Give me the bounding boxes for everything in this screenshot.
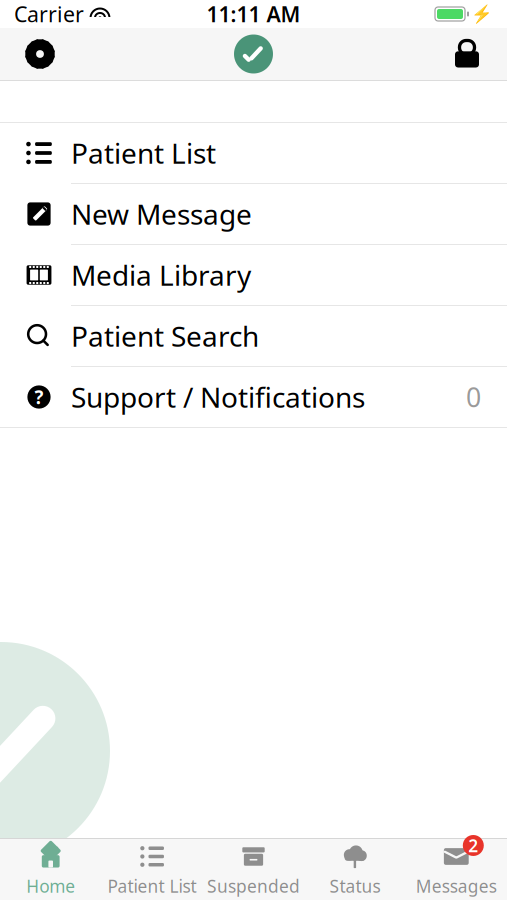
staticText: Home	[26, 874, 75, 897]
staticText: 11:11 AM	[206, 0, 300, 28]
staticText: New Message	[71, 195, 252, 233]
button[interactable]: Suspended	[203, 841, 304, 897]
button[interactable]: New Message	[0, 184, 507, 245]
button[interactable]: 2	[406, 841, 507, 897]
button[interactable]: Patient List	[101, 841, 203, 897]
staticText: ?	[34, 385, 43, 409]
button[interactable]: Lock	[439, 29, 495, 79]
staticText: ⚡	[471, 4, 493, 24]
staticText: 2	[468, 834, 478, 857]
staticText: Messages	[416, 874, 497, 897]
staticText: Status	[329, 874, 380, 897]
button[interactable]: ?	[0, 367, 507, 428]
staticText: Support / Notifications	[71, 378, 365, 416]
button[interactable]: Settings	[12, 29, 68, 79]
staticText: 0	[466, 379, 481, 415]
button[interactable]: Media Library	[0, 245, 507, 306]
button[interactable]: Patient Search	[0, 306, 507, 367]
staticText: Suspended	[207, 874, 300, 897]
button[interactable]: Status	[304, 841, 406, 897]
staticText: Carrier	[14, 0, 84, 28]
staticText: Patient List	[71, 134, 216, 172]
button[interactable]: Home	[0, 841, 101, 897]
staticText: Media Library	[71, 256, 251, 294]
staticText: Patient List	[108, 874, 197, 897]
staticText: Patient Search	[71, 317, 259, 355]
button[interactable]: Patient List	[0, 123, 507, 184]
